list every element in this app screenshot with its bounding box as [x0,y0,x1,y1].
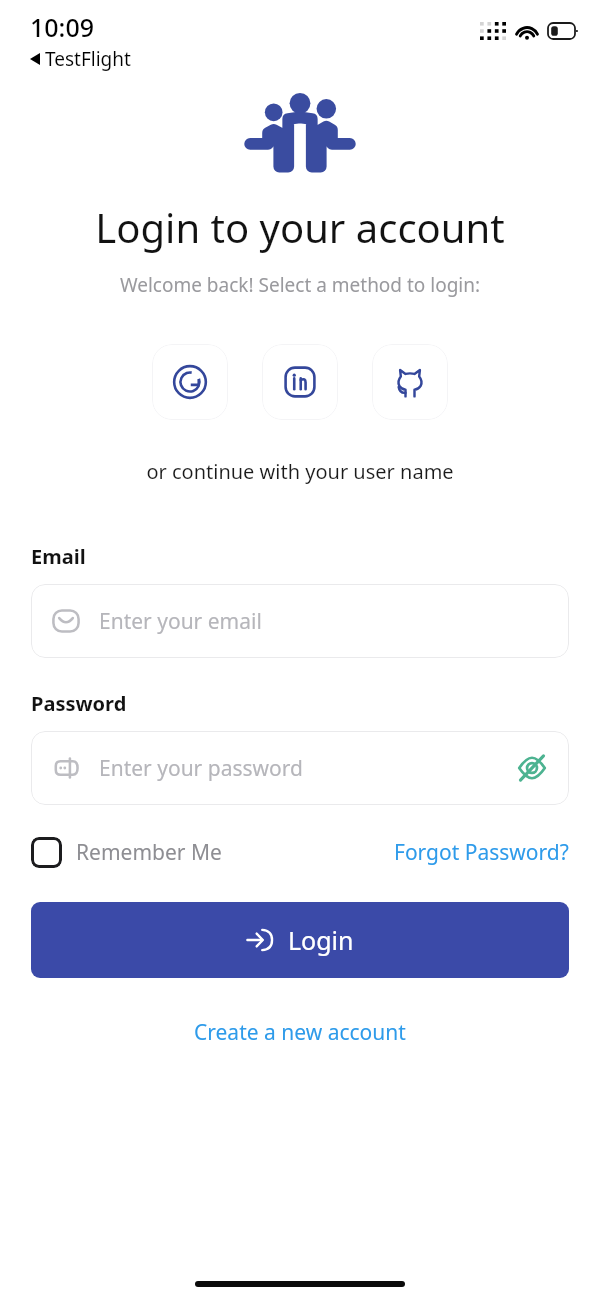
button[interactable]: Create a new account [186,1014,414,1051]
staticText: or continue with your user name [0,458,600,485]
staticText: Login to your account [0,200,600,254]
button[interactable]: Sign in with Google [152,344,228,420]
staticText: Enter your email [99,607,551,636]
button[interactable]: Remember Me [31,833,222,872]
staticText: TestFlight [45,46,131,72]
staticText: Login [288,923,354,957]
staticText: Remember Me [76,838,222,867]
button[interactable]: Enter your password [31,731,569,805]
button[interactable]: Show password [513,749,551,787]
staticText: 10:09 [30,10,95,44]
staticText: Password [31,690,127,717]
staticText: Create a new account [194,1018,406,1047]
staticText: Enter your password [99,754,513,783]
staticText: Forgot Password? [394,838,569,867]
staticText: Welcome back! Select a method to login: [0,272,600,298]
button[interactable]: Enter your email [31,584,569,658]
staticText: Email [31,543,86,570]
button[interactable]: Sign in with GitHub [372,344,448,420]
button[interactable]: Forgot Password? [394,834,569,871]
button[interactable]: Login [31,902,569,978]
button[interactable]: Sign in with LinkedIn [262,344,338,420]
